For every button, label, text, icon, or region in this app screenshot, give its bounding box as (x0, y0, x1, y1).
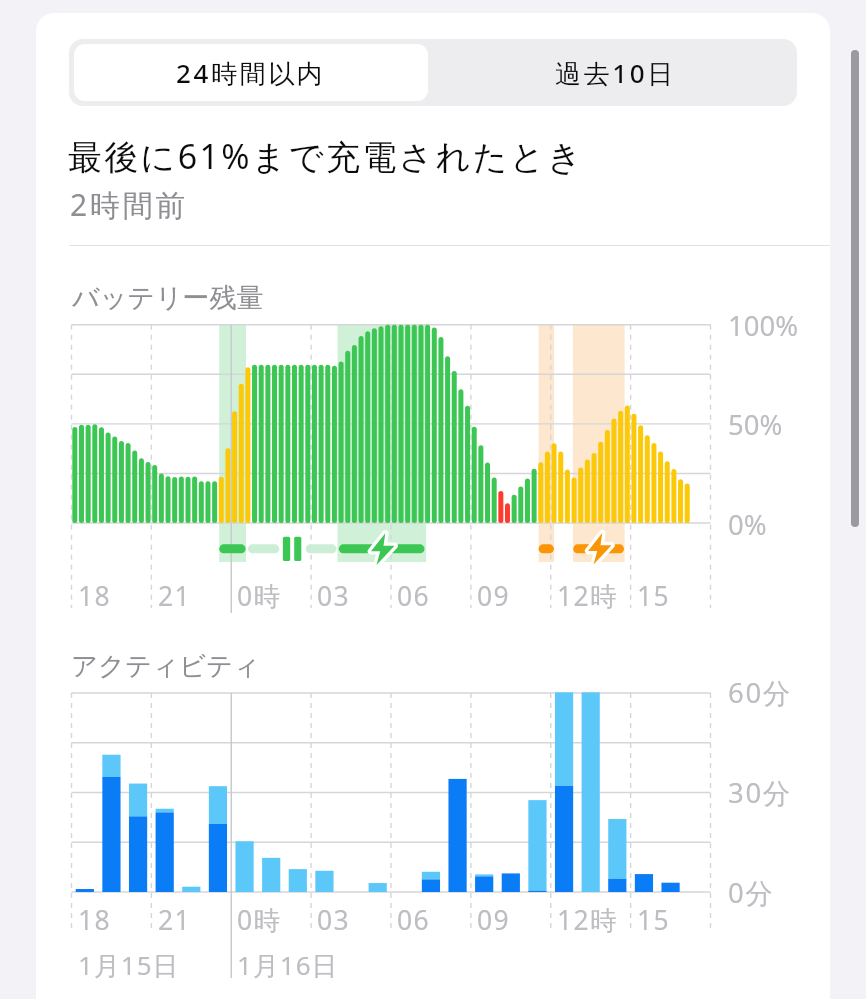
staticText: 最後に61%まで充電されたとき (68, 133, 585, 179)
staticText: アクティビティ (71, 650, 261, 683)
staticText: 03 (317, 902, 351, 938)
staticText: 2時間前 (70, 184, 189, 225)
staticText: 0時 (237, 902, 282, 938)
staticText: 21 (158, 902, 192, 938)
staticText: 06 (397, 578, 431, 614)
staticText: 18 (78, 902, 112, 938)
staticText: 15 (637, 578, 671, 614)
staticText: 0時 (237, 578, 282, 614)
button[interactable]: 過去10日 (433, 39, 797, 106)
staticText: 60分 (728, 674, 793, 712)
staticText: 18 (78, 578, 112, 614)
staticText: 0分 (728, 874, 775, 912)
staticText: 12時 (557, 578, 619, 614)
button[interactable]: 24時間以内 (74, 44, 428, 101)
staticText: 30分 (728, 774, 793, 812)
staticText: 1月15日 (78, 947, 180, 983)
staticText: 15 (637, 902, 671, 938)
staticText: 06 (397, 902, 431, 938)
staticText: 21 (158, 578, 192, 614)
staticText: 12時 (557, 902, 619, 938)
staticText: 0% (728, 506, 767, 543)
staticText: 09 (477, 578, 511, 614)
staticText: 1月16日 (237, 947, 339, 983)
staticText: 24時間以内 (176, 55, 326, 91)
staticText: 過去10日 (555, 55, 676, 91)
staticText: 03 (317, 578, 351, 614)
staticText: バッテリー残量 (72, 281, 264, 315)
staticText: 50% (728, 406, 783, 443)
staticText: 09 (477, 902, 511, 938)
staticText: 100% (728, 307, 799, 344)
